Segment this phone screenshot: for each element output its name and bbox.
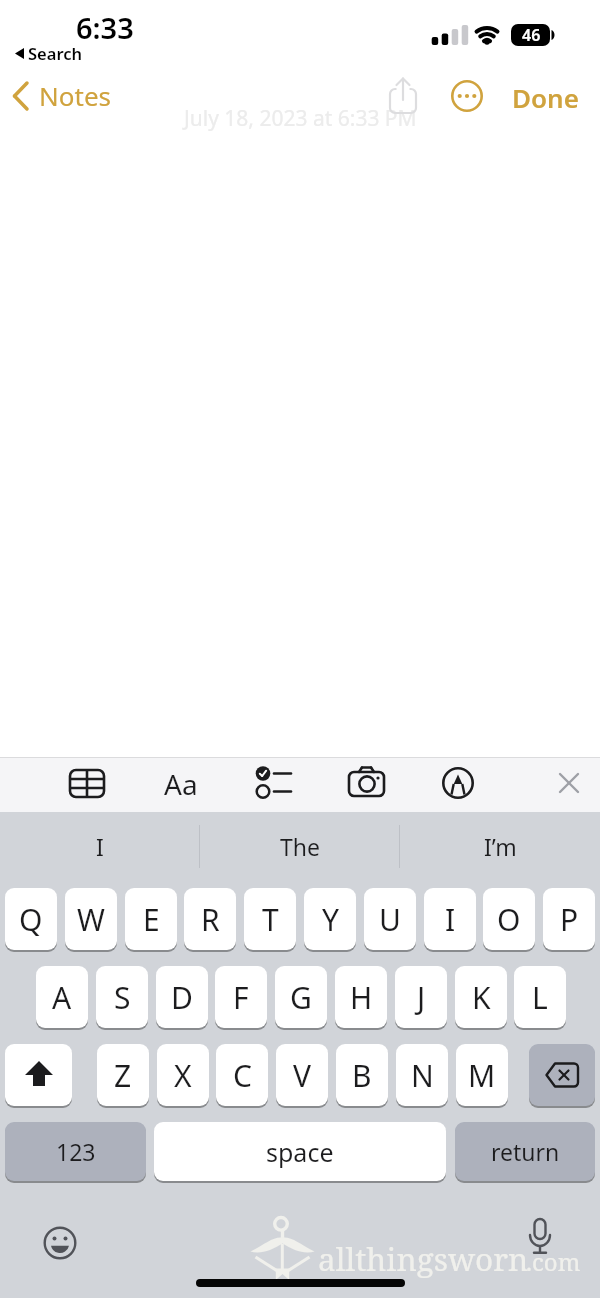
button[interactable]: C bbox=[216, 1044, 268, 1106]
button[interactable]: I bbox=[0, 812, 200, 880]
button[interactable] bbox=[529, 1044, 595, 1106]
button[interactable] bbox=[554, 768, 584, 798]
staticText: F bbox=[233, 977, 249, 1018]
button[interactable]: P bbox=[543, 888, 595, 950]
staticText: .com bbox=[526, 1245, 581, 1278]
button[interactable] bbox=[66, 765, 108, 803]
staticText: T bbox=[262, 899, 279, 940]
staticText: W bbox=[77, 899, 105, 940]
button[interactable]: I’m bbox=[400, 812, 600, 880]
staticText: Done bbox=[512, 80, 579, 114]
button[interactable]: N bbox=[396, 1044, 448, 1106]
button[interactable]: F bbox=[215, 966, 267, 1028]
staticText: V bbox=[293, 1055, 311, 1096]
button[interactable]: The bbox=[200, 812, 400, 880]
button[interactable]: M bbox=[456, 1044, 508, 1106]
button[interactable]: Notes bbox=[12, 78, 111, 113]
button[interactable]: J bbox=[395, 966, 447, 1028]
staticText: H bbox=[350, 977, 373, 1018]
button[interactable]: Done bbox=[505, 80, 585, 114]
button[interactable] bbox=[451, 80, 483, 112]
button[interactable]: S bbox=[96, 966, 148, 1028]
staticText: 6:33 bbox=[76, 8, 134, 47]
staticText: P bbox=[560, 899, 579, 940]
button[interactable]: Y bbox=[304, 888, 356, 950]
button[interactable]: T bbox=[244, 888, 296, 950]
staticText: Aa bbox=[164, 765, 198, 803]
staticText: I’m bbox=[484, 831, 517, 862]
staticText: A bbox=[52, 977, 72, 1018]
staticText: U bbox=[379, 899, 401, 940]
staticText: B bbox=[352, 1055, 372, 1096]
button[interactable]: Q bbox=[5, 888, 57, 950]
staticText: Y bbox=[322, 899, 339, 940]
staticText: The bbox=[280, 831, 320, 862]
button[interactable]: G bbox=[275, 966, 327, 1028]
staticText: Q bbox=[19, 899, 43, 940]
staticText: return bbox=[491, 1136, 560, 1167]
button[interactable]: R bbox=[184, 888, 236, 950]
staticText: C bbox=[233, 1055, 252, 1096]
staticText: X bbox=[174, 1055, 192, 1096]
staticText: allthingsworn bbox=[318, 1237, 529, 1280]
button[interactable]: V bbox=[276, 1044, 328, 1106]
staticText: Z bbox=[114, 1055, 132, 1096]
button[interactable] bbox=[250, 762, 295, 804]
staticText: Notes bbox=[39, 78, 111, 113]
button[interactable]: D bbox=[156, 966, 208, 1028]
button[interactable]: U bbox=[364, 888, 416, 950]
button[interactable] bbox=[5, 1044, 72, 1106]
staticText: L bbox=[532, 977, 548, 1018]
button[interactable]: A bbox=[36, 966, 88, 1028]
button[interactable]: return bbox=[455, 1122, 595, 1181]
staticText: G bbox=[290, 977, 312, 1018]
staticText: I bbox=[96, 831, 104, 862]
staticText: S bbox=[114, 977, 131, 1018]
button[interactable] bbox=[384, 74, 420, 116]
staticText: 46 bbox=[522, 24, 541, 46]
button[interactable]: B bbox=[336, 1044, 388, 1106]
staticText: R bbox=[201, 899, 220, 940]
button[interactable]: space bbox=[154, 1122, 446, 1181]
button[interactable]: O bbox=[483, 888, 535, 950]
staticText: I bbox=[445, 899, 456, 940]
button[interactable]: K bbox=[455, 966, 507, 1028]
button[interactable]: E bbox=[125, 888, 177, 950]
staticText: 123 bbox=[56, 1136, 96, 1167]
button[interactable] bbox=[441, 766, 475, 800]
staticText: J bbox=[417, 977, 426, 1018]
button[interactable] bbox=[346, 763, 388, 803]
button[interactable]: 123 bbox=[5, 1122, 146, 1181]
button[interactable]: Search bbox=[15, 42, 83, 64]
staticText: O bbox=[497, 899, 521, 940]
staticText: space bbox=[266, 1135, 334, 1169]
button[interactable] bbox=[522, 1216, 558, 1262]
button[interactable]: Z bbox=[97, 1044, 149, 1106]
staticText: D bbox=[171, 977, 193, 1018]
button[interactable] bbox=[42, 1225, 78, 1261]
button[interactable]: W bbox=[65, 888, 117, 950]
staticText: Search bbox=[28, 42, 83, 64]
button[interactable]: L bbox=[514, 966, 566, 1028]
staticText: N bbox=[411, 1055, 434, 1096]
staticText: M bbox=[468, 1055, 496, 1096]
button[interactable]: H bbox=[335, 966, 387, 1028]
button[interactable]: X bbox=[157, 1044, 209, 1106]
staticText: K bbox=[472, 977, 491, 1018]
button[interactable]: I bbox=[424, 888, 476, 950]
staticText: E bbox=[143, 899, 160, 940]
staticText: July 18, 2023 at 6:33 PM bbox=[184, 104, 417, 133]
